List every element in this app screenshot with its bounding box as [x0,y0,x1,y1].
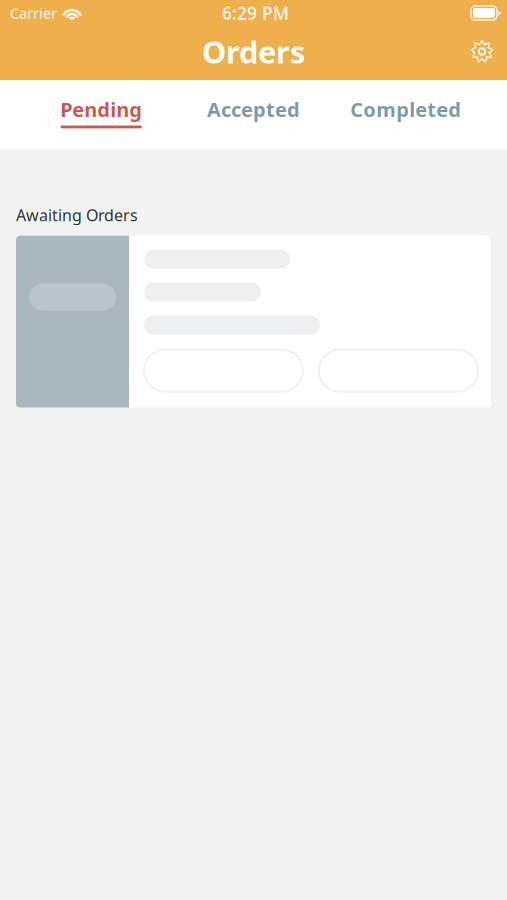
button[interactable]: Completed [330,80,482,148]
button[interactable]: Decline order [319,350,478,392]
staticText: Completed [350,96,461,123]
button[interactable]: Pending [25,80,177,148]
staticText: Pending [60,96,142,123]
staticText: Accepted [207,96,300,123]
button[interactable]: Accept order [144,350,303,392]
button[interactable]: Accepted [177,80,330,148]
button[interactable]: Settings [459,30,500,72]
staticText: Carrier [10,3,57,23]
staticText: Awaiting Orders [16,204,138,226]
staticText: 6:29 PM [222,1,289,24]
staticText: Orders [202,31,305,72]
